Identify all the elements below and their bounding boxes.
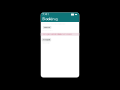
- staticText: Booking: [42, 16, 58, 21]
- button[interactable]: Try again: [42, 38, 51, 41]
- staticText: Sorry, we could not complete your reques…: [42, 33, 71, 35]
- button[interactable]: Search: [43, 26, 51, 29]
- staticText: Search: [44, 26, 50, 28]
- staticText: ▮▮▮ ▬: [71, 13, 78, 16]
- staticText: 9:41: [42, 12, 49, 16]
- staticText: Try again: [43, 39, 50, 41]
